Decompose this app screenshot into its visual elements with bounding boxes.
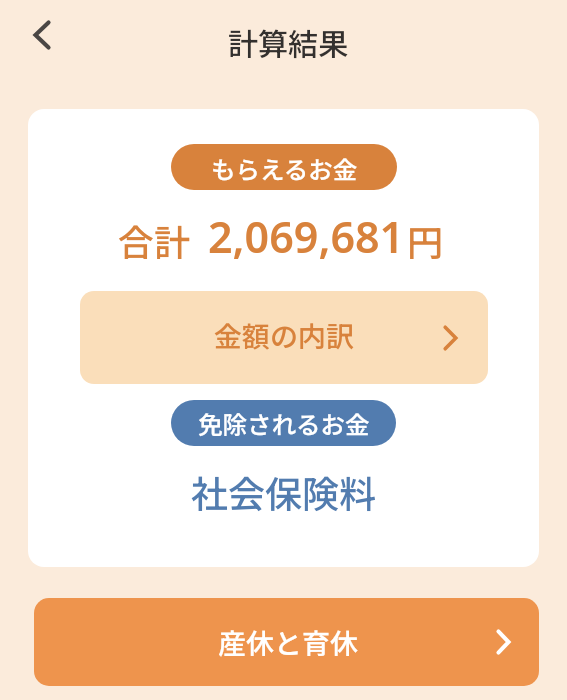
staticText: 産休と育休	[218, 622, 359, 663]
button[interactable]: 金額の内訳	[80, 291, 488, 384]
staticText: 免除されるお金	[198, 406, 370, 441]
button[interactable]: もらえるお金	[171, 144, 397, 190]
staticText: 円	[407, 214, 444, 266]
staticText: もらえるお金	[211, 151, 358, 186]
button[interactable]: Back	[19, 11, 65, 57]
staticText: 金額の内訳	[214, 315, 355, 356]
button[interactable]: 産休と育休	[34, 598, 539, 686]
staticText: 計算結果	[228, 20, 348, 63]
button[interactable]: 免除されるお金	[171, 400, 396, 446]
staticText: 社会保険料	[191, 465, 376, 519]
staticText: 2,069,681	[208, 207, 405, 266]
staticText: 合計	[118, 214, 191, 266]
